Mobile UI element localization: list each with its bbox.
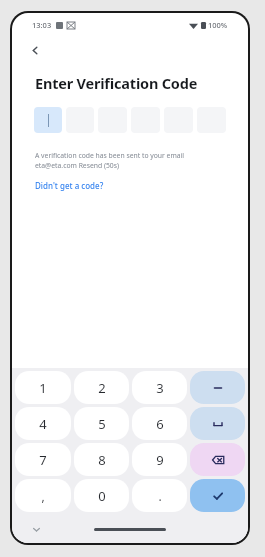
staticText: 9: [156, 451, 164, 469]
staticText: 7: [39, 451, 47, 469]
button[interactable]: Didn't get a code?: [35, 180, 104, 191]
button[interactable]: 9: [132, 443, 187, 476]
button[interactable]: 1: [15, 371, 71, 404]
button[interactable]: Confirm: [190, 479, 245, 512]
staticText: 5: [98, 415, 106, 433]
button[interactable]: Space: [190, 407, 245, 440]
staticText: 0: [98, 487, 106, 505]
staticText: 6: [156, 415, 164, 433]
button[interactable]: ,: [15, 479, 71, 512]
button[interactable]: 2: [74, 371, 129, 404]
button[interactable]: Backspace: [190, 443, 245, 476]
button[interactable]: 3: [132, 371, 187, 404]
staticText: 3: [156, 379, 164, 397]
staticText: ,: [41, 488, 45, 504]
button[interactable]: Back: [24, 39, 46, 61]
button[interactable]: 6: [132, 407, 187, 440]
button[interactable]: Dash: [190, 371, 245, 404]
button[interactable]: 4: [15, 407, 71, 440]
staticText: 8: [98, 451, 106, 469]
staticText: 1: [39, 379, 47, 397]
staticText: 4: [39, 415, 47, 433]
staticText: eta@eta.com Resend (50s): [35, 161, 120, 170]
button[interactable]: 7: [15, 443, 71, 476]
button[interactable]: Digit 1: [34, 107, 62, 133]
staticText: 13:03: [32, 20, 52, 30]
button[interactable]: 0: [74, 479, 129, 512]
staticText: Didn't get a code?: [35, 180, 104, 191]
staticText: A verification code has been sent to you…: [35, 151, 185, 160]
button[interactable]: .: [132, 479, 187, 512]
staticText: 100%: [208, 20, 228, 30]
button[interactable]: Hide keyboard: [26, 519, 46, 539]
staticText: .: [158, 488, 162, 504]
button[interactable]: 8: [74, 443, 129, 476]
button[interactable]: 5: [74, 407, 129, 440]
staticText: 2: [98, 379, 106, 397]
staticText: Enter Verification Code: [35, 73, 198, 93]
